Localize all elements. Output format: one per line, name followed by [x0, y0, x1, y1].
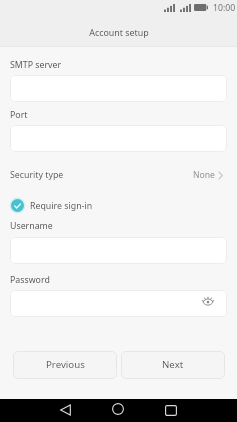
button[interactable] — [10, 75, 227, 102]
staticText: Security type — [10, 169, 64, 181]
staticText: SMTP server — [10, 59, 62, 71]
staticText: None — [193, 169, 215, 181]
button[interactable]: Require sign-in — [0, 195, 237, 216]
button[interactable]: Back — [47, 398, 83, 421]
staticText: Username — [10, 220, 53, 232]
button[interactable]: Show password — [197, 290, 219, 311]
button[interactable]: Previous — [13, 351, 117, 379]
button[interactable] — [10, 125, 227, 152]
staticText: Account setup — [89, 26, 149, 38]
button[interactable]: Recent apps — [153, 399, 189, 422]
button[interactable]: Next — [121, 351, 225, 379]
button[interactable]: Security type — [0, 164, 237, 186]
staticText: Password — [10, 274, 50, 286]
staticText: Port — [10, 109, 28, 121]
button[interactable] — [10, 237, 227, 264]
button[interactable]: Home — [100, 397, 136, 420]
button[interactable]: Show password — [10, 290, 227, 317]
staticText: Require sign-in — [30, 200, 93, 212]
staticText: 10:00 — [213, 2, 236, 14]
staticText: Next — [162, 358, 184, 371]
staticText: Previous — [46, 358, 85, 371]
